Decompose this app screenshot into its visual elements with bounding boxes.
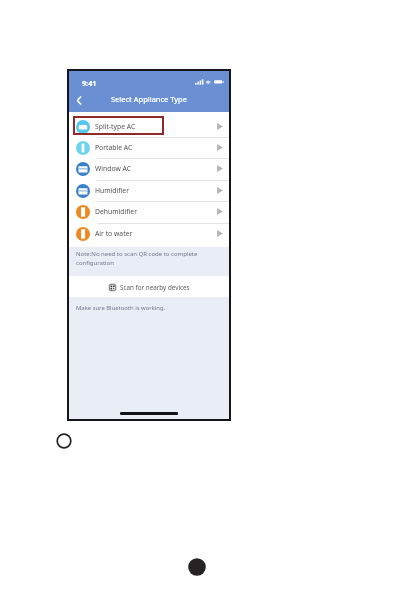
button[interactable]: Portable AC <box>69 137 229 158</box>
staticText: Portable AC <box>95 143 133 152</box>
staticText: Select Appliance Type <box>111 94 187 104</box>
button[interactable]: Air to water <box>69 223 229 244</box>
button[interactable]: Split-type AC <box>69 116 229 137</box>
staticText: Window AC <box>95 164 132 173</box>
staticText: Split-type AC <box>95 122 136 131</box>
staticText: Air to water <box>95 229 133 238</box>
staticText: Humidifier <box>95 186 130 195</box>
button[interactable]: Humidifier <box>69 180 229 201</box>
button[interactable]: Back <box>69 90 89 111</box>
staticText: Dehumidifier <box>95 207 137 216</box>
staticText: Scan for nearby devices <box>120 283 190 292</box>
staticText: Make sure Bluetooth is working. <box>76 304 166 312</box>
staticText: 9:41 <box>82 78 97 88</box>
button[interactable]: Dehumidifier <box>69 201 229 222</box>
button[interactable]: Window AC <box>69 158 229 179</box>
button[interactable]: Scan for nearby devices <box>69 276 229 297</box>
staticText: Note:No need to scan QR code to complete… <box>76 250 217 267</box>
